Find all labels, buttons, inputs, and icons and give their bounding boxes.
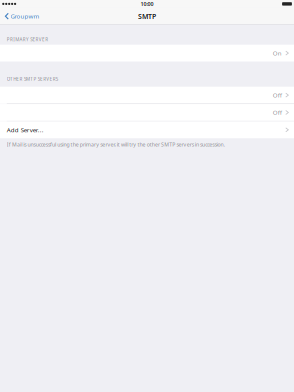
- staticText: OTHER SMTP SERVERS: [7, 76, 58, 82]
- button[interactable]: On: [0, 45, 294, 62]
- staticText: Off: [273, 108, 282, 117]
- staticText: Off: [273, 91, 282, 99]
- staticText: Groupwm: [11, 12, 40, 20]
- staticText: PRIMARY SERVER: [7, 36, 48, 42]
- staticText: 10:00: [140, 0, 153, 8]
- button[interactable]: Groupwm: [0, 10, 40, 22]
- button[interactable]: Off: [0, 87, 294, 104]
- staticText: SMTP: [138, 11, 156, 21]
- staticText: Add Server...: [7, 126, 44, 134]
- button[interactable]: Off: [0, 104, 294, 121]
- button[interactable]: Add Server...: [0, 121, 294, 138]
- staticText: On: [273, 49, 282, 57]
- staticText: If Mail is unsuccessful using the primar…: [7, 141, 225, 148]
